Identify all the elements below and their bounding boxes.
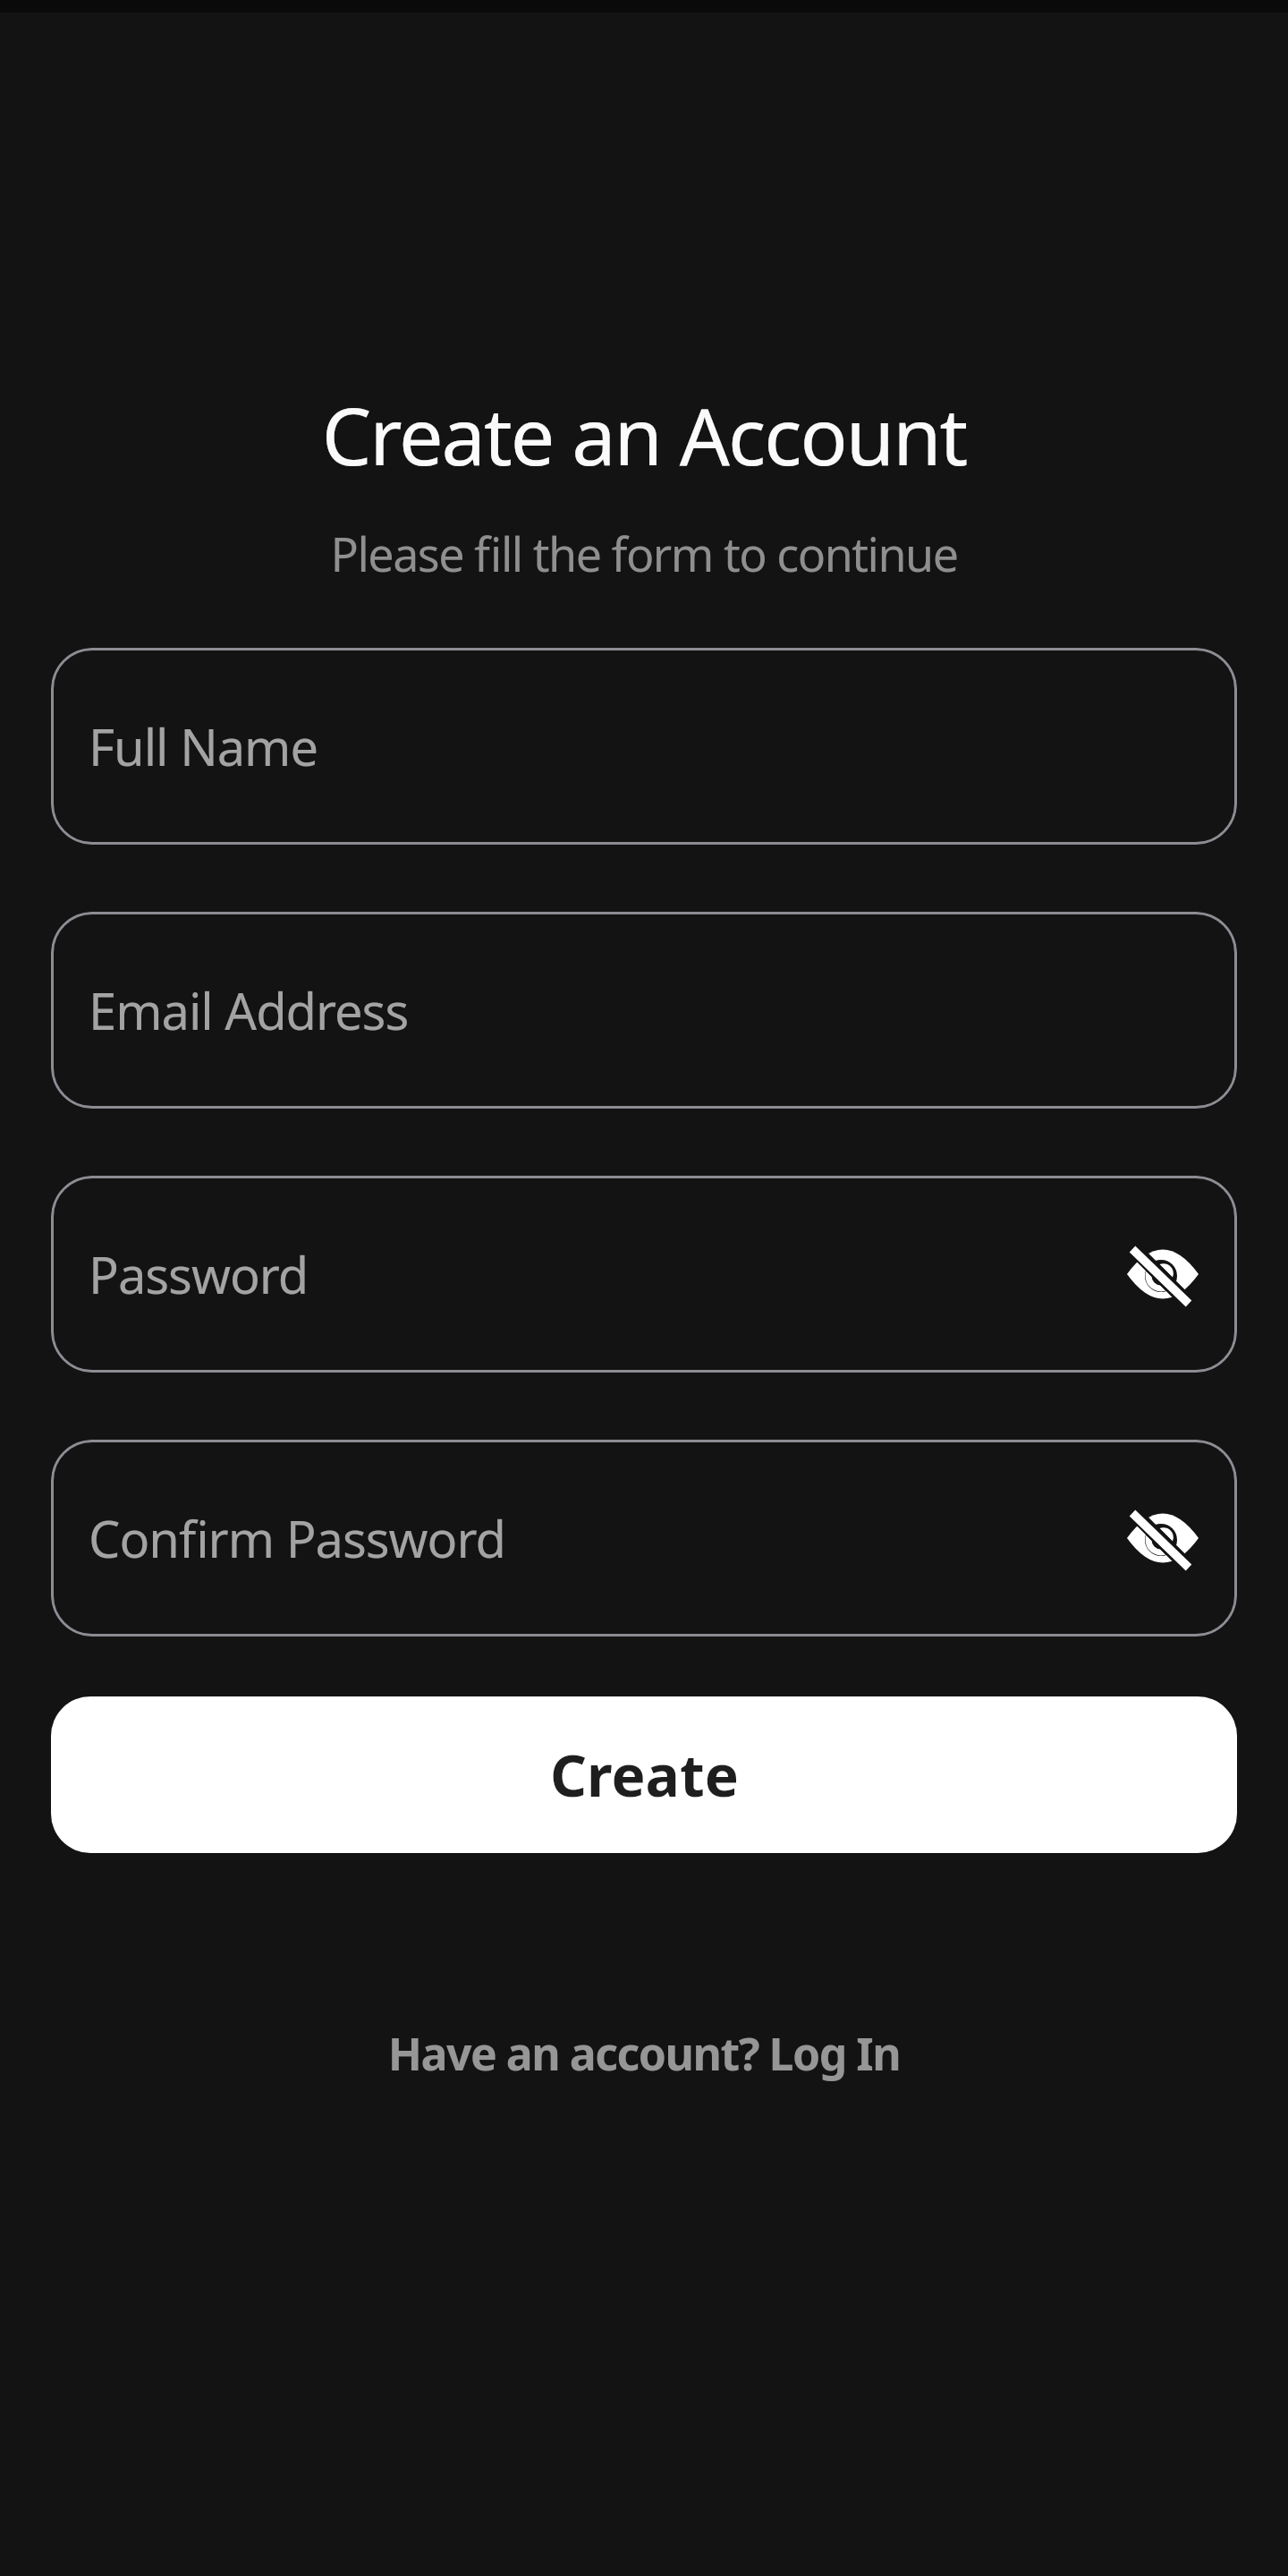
- staticText: Create: [550, 1736, 739, 1814]
- button[interactable]: Have an account? Log In: [0, 2023, 1288, 2084]
- staticText: Password: [89, 1240, 309, 1308]
- staticText: Confirm Password: [89, 1504, 505, 1572]
- staticText: Full Name: [89, 712, 318, 780]
- button[interactable]: [1120, 1231, 1206, 1317]
- button[interactable]: [1120, 1495, 1206, 1581]
- button[interactable]: Password: [51, 1176, 1237, 1373]
- staticText: Please fill the form to continue: [0, 522, 1288, 585]
- button[interactable]: Full Name: [51, 648, 1237, 845]
- staticText: Create an Account: [0, 381, 1288, 489]
- button[interactable]: Email Address: [51, 912, 1237, 1109]
- button[interactable]: Create: [51, 1696, 1237, 1853]
- staticText: Email Address: [89, 976, 409, 1044]
- button[interactable]: Confirm Password: [51, 1440, 1237, 1637]
